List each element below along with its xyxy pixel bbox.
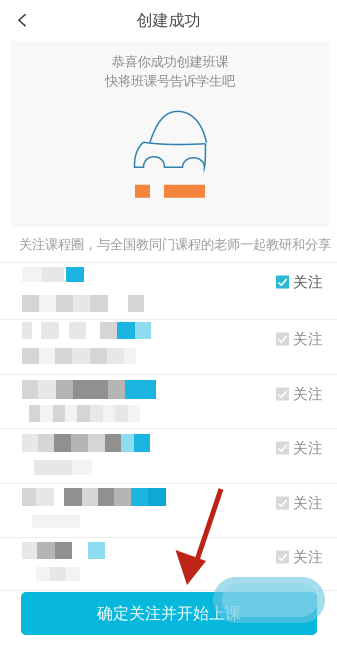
button[interactable]: 确定关注并开始上课: [21, 592, 317, 635]
button[interactable]: 关注: [0, 320, 337, 375]
staticText: 关注: [293, 385, 323, 403]
button[interactable]: 关注: [0, 263, 337, 320]
staticText: 关注: [293, 548, 323, 566]
staticText: 确定关注并开始上课: [97, 604, 241, 623]
staticText: 创建成功: [136, 11, 200, 30]
button[interactable]: 关注: [0, 375, 337, 429]
staticText: 关注: [293, 330, 323, 348]
staticText: 恭喜你成功创建班课: [111, 53, 228, 70]
button[interactable]: 返回: [0, 0, 45, 40]
staticText: 快将班课号告诉学生吧: [105, 73, 235, 89]
button[interactable]: 关注: [0, 538, 337, 591]
button[interactable]: 关注: [0, 429, 337, 484]
staticText: 关注: [293, 439, 323, 457]
staticText: 关注: [293, 273, 323, 291]
staticText: 关注: [293, 494, 323, 512]
button[interactable]: 关注: [0, 484, 337, 538]
staticText: 关注课程圈，与全国教同门课程的老师一起教研和分享: [19, 236, 331, 253]
